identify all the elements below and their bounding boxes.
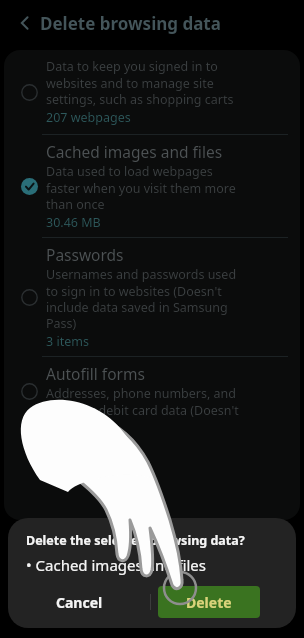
staticText: Cancel	[56, 593, 103, 612]
staticText: Cached images and files	[46, 141, 223, 162]
staticText: Data used to load webpages faster when y…	[46, 163, 236, 212]
staticText: Delete browsing data	[40, 12, 221, 35]
staticText: • Cached images and files	[26, 555, 206, 575]
button[interactable]: Select	[4, 238, 300, 356]
other: Select	[16, 284, 42, 310]
staticText: Delete	[186, 593, 232, 612]
other: Select	[16, 79, 42, 105]
staticText: 30.46 MB	[46, 214, 101, 231]
button[interactable]: Select	[4, 50, 300, 134]
staticText: Data to keep you signed in to websites a…	[46, 58, 234, 107]
staticText: Usernames and passwords used to sign in …	[46, 266, 237, 331]
button[interactable]: Select	[4, 135, 300, 237]
staticText: Passwords	[46, 244, 124, 265]
button[interactable]: Delete	[158, 586, 260, 618]
staticText: 207 webpages	[46, 109, 131, 126]
staticText: Addresses, phone numbers, and credit or …	[46, 385, 239, 418]
other: Select	[16, 378, 42, 404]
other: Select	[16, 173, 42, 199]
staticText: Autofill forms	[46, 363, 145, 384]
button[interactable]: Back	[10, 8, 40, 38]
button[interactable]: Select	[4, 357, 300, 424]
button[interactable]: Cancel	[8, 585, 150, 619]
staticText: Delete the selected browsing data?	[26, 532, 245, 549]
staticText: 3 items	[46, 333, 89, 350]
